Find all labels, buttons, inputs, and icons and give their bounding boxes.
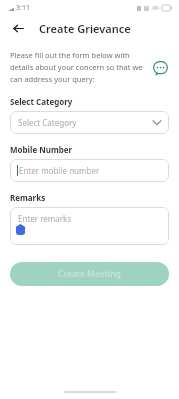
staticText: Select Category (10, 96, 73, 107)
button[interactable]: Select Category (10, 111, 169, 134)
button[interactable]: Create Meeting (10, 262, 169, 286)
staticText: Select Category (18, 117, 77, 128)
staticText: 3:11 (16, 3, 30, 13)
button[interactable]: Enter mobile number (10, 159, 169, 182)
staticText: Remarks (10, 192, 46, 203)
button[interactable]: Chat support (150, 58, 170, 78)
staticText: Enter remarks (18, 213, 72, 224)
staticText: Create Grievance (39, 21, 131, 36)
staticText: Enter mobile number (19, 165, 100, 176)
staticText: Mobile Number (10, 144, 73, 155)
button[interactable]: Back (9, 19, 27, 37)
staticText: Please fill out the form below with deta… (10, 50, 144, 85)
button[interactable]: Enter remarks (10, 207, 169, 245)
staticText: Create Meeting (58, 268, 121, 280)
